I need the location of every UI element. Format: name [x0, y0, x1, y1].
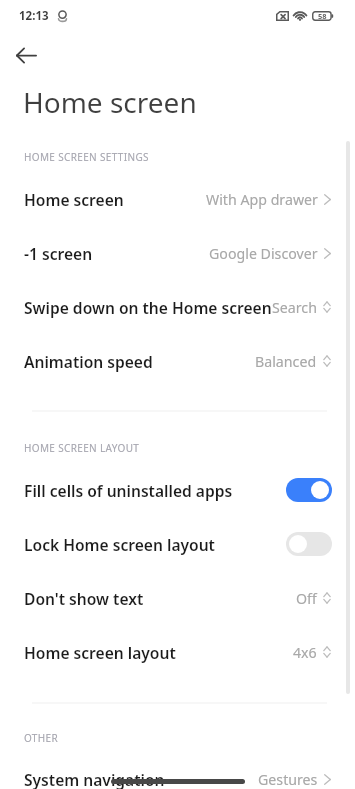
- staticText: 12:13: [19, 8, 49, 24]
- staticText: Home screen layout: [24, 642, 176, 663]
- staticText: Fill cells of uninstalled apps: [24, 480, 233, 501]
- button[interactable]: Lock Home screen layout: [0, 517, 355, 571]
- button[interactable]: Animation speed: [0, 334, 355, 388]
- button[interactable]: On: [286, 478, 332, 502]
- staticText: Balanced: [255, 352, 317, 371]
- button[interactable]: Home screen: [0, 172, 355, 226]
- staticText: System navigation: [24, 769, 165, 789]
- staticText: 4x6: [293, 643, 317, 662]
- button[interactable]: Swipe down on the Home screen: [0, 280, 355, 334]
- staticText: Off: [296, 589, 317, 608]
- staticText: Gestures: [258, 770, 318, 789]
- staticText: -1 screen: [24, 243, 93, 264]
- staticText: Home screen: [24, 189, 124, 210]
- staticText: With App drawer: [206, 190, 318, 209]
- staticText: Home screen: [23, 83, 197, 121]
- button[interactable]: -1 screen: [0, 226, 355, 280]
- staticText: HOME SCREEN LAYOUT: [24, 441, 140, 455]
- staticText: Lock Home screen layout: [24, 534, 215, 555]
- staticText: Animation speed: [24, 351, 153, 372]
- button[interactable]: Off: [286, 532, 332, 556]
- staticText: Swipe down on the Home screen: [24, 297, 272, 318]
- button[interactable]: Fill cells of uninstalled apps: [0, 463, 355, 517]
- staticText: Google Discover: [209, 244, 318, 263]
- staticText: 58: [318, 11, 327, 21]
- button[interactable]: Home screen layout: [0, 625, 355, 679]
- button[interactable]: System navigation: [0, 752, 355, 789]
- button[interactable]: Back: [8, 37, 44, 73]
- staticText: HOME SCREEN SETTINGS: [24, 150, 149, 164]
- staticText: Don't show text: [24, 588, 144, 609]
- staticText: OTHER: [24, 731, 59, 745]
- button[interactable]: Don't show text: [0, 571, 355, 625]
- staticText: Search: [272, 298, 317, 317]
